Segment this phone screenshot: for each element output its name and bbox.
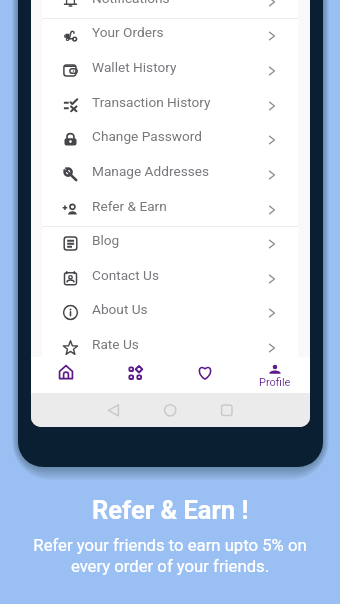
staticText: Blog — [92, 232, 120, 248]
staticText: Refer & Earn — [92, 198, 167, 214]
staticText: Change Password — [92, 128, 202, 144]
staticText: Refer your friends to earn upto 5% on ev… — [33, 536, 307, 576]
button[interactable]: Blog — [42, 226, 298, 261]
staticText: Refer & Earn ! — [92, 495, 249, 525]
button[interactable]: Your Orders — [42, 18, 298, 53]
button[interactable]: Manage Addresses — [42, 157, 298, 192]
staticText: Rate Us — [92, 336, 139, 352]
button[interactable]: Categories — [100, 357, 170, 393]
staticText: Profile — [259, 376, 291, 389]
staticText: Wallet History — [92, 59, 177, 75]
button[interactable]: About Us — [42, 295, 298, 330]
button[interactable]: Home — [31, 357, 100, 393]
button[interactable]: Notifications — [42, 0, 298, 19]
staticText: About Us — [92, 301, 148, 317]
button[interactable]: Change Password — [42, 122, 298, 157]
button[interactable]: Wishlist — [170, 357, 240, 393]
button[interactable]: Wallet History — [42, 53, 298, 88]
button[interactable]: Refer & Earn — [42, 192, 298, 227]
button[interactable]: Transaction History — [42, 88, 298, 123]
staticText: Your Orders — [92, 24, 164, 40]
button[interactable]: Rate Us — [42, 330, 298, 365]
staticText: Notifications — [92, 0, 170, 6]
staticText: Transaction History — [92, 94, 211, 110]
button[interactable]: Profile — [240, 357, 310, 393]
staticText: Manage Addresses — [92, 163, 210, 179]
button[interactable]: Contact Us — [42, 261, 298, 296]
staticText: Contact Us — [92, 267, 160, 283]
